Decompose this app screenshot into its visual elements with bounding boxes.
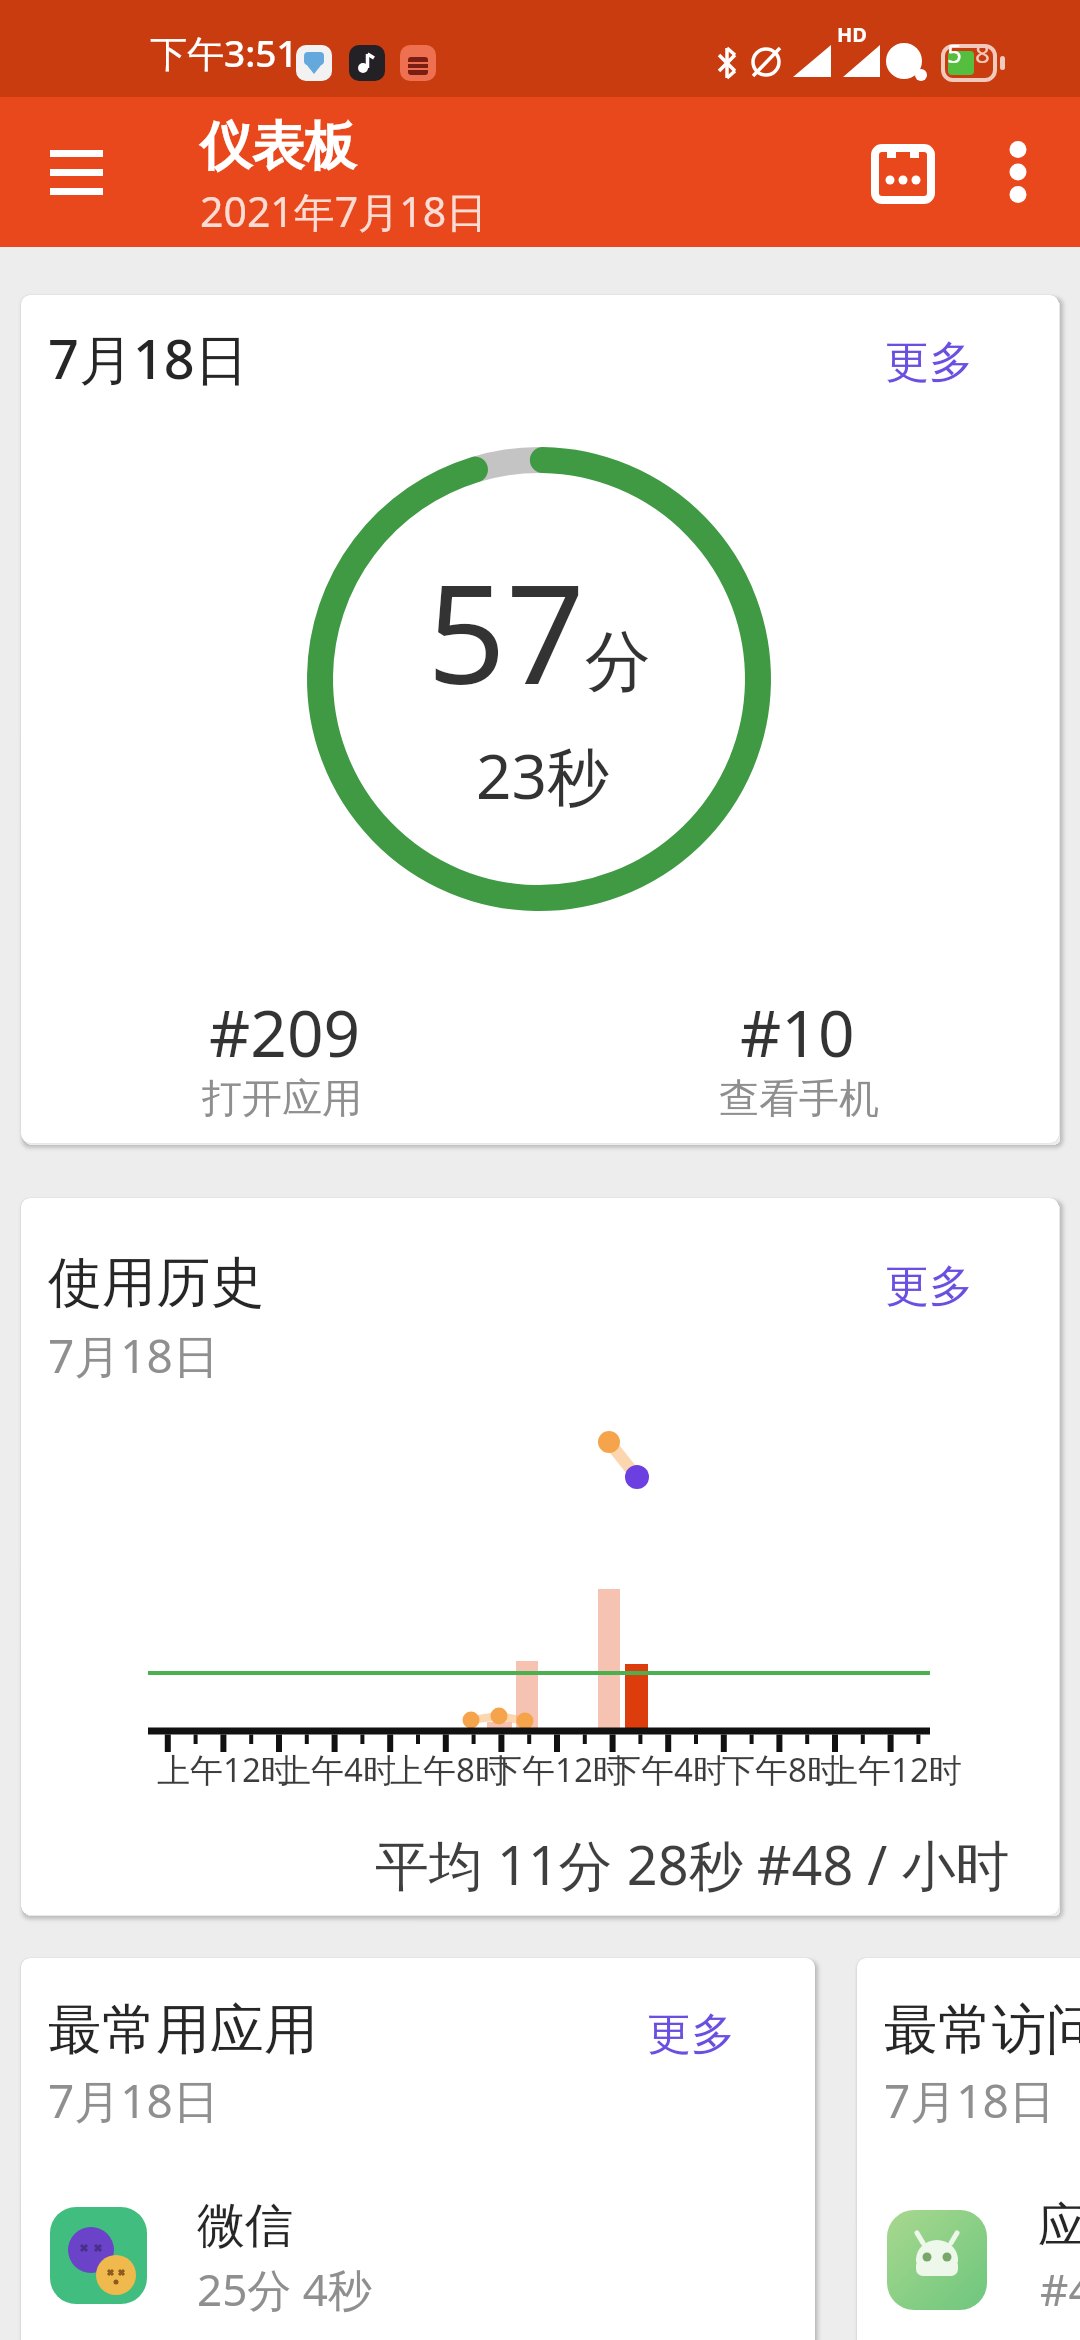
staticText: 上午12时 (825, 1747, 962, 1792)
staticText: 7月18日 (48, 2069, 219, 2132)
staticText: 上午4时 (278, 1747, 396, 1792)
staticText: 更多 (647, 2007, 735, 2062)
staticText: 更多 (885, 335, 973, 390)
staticText: 最常用应用 (48, 1996, 318, 2064)
staticText: 57分 (427, 536, 651, 716)
staticText: 7月18日 (884, 2069, 1055, 2132)
staticText: 仪表板 (200, 114, 356, 180)
staticText: 最常访问 (884, 1996, 1080, 2064)
staticText: 更多 (885, 1259, 973, 1314)
button[interactable] (28, 124, 124, 220)
staticText: 上午12时 (157, 1747, 294, 1792)
staticText: 下午8时 (722, 1747, 840, 1792)
staticText: 下午3:51 (150, 27, 298, 78)
staticText: 7月18日 (48, 1324, 219, 1387)
staticText: 8 (975, 35, 990, 70)
staticText: 下午4时 (608, 1747, 726, 1792)
staticText: 上午8时 (390, 1747, 508, 1792)
staticText: #48 (1040, 2259, 1080, 2319)
button[interactable]: 更多 (813, 1226, 973, 1346)
button[interactable] (970, 124, 1066, 220)
button[interactable]: 更多 (575, 1974, 735, 2094)
staticText: 2021年7月18日 (200, 183, 488, 239)
staticText: 5 (947, 35, 962, 70)
staticText: 下午12时 (489, 1747, 626, 1792)
button[interactable]: 更多 (813, 302, 973, 422)
staticText: 平均 11分 28秒 #48 / 小时 (375, 1827, 1010, 1901)
staticText: #209 (209, 989, 361, 1076)
button[interactable] (50, 2199, 790, 2319)
staticText: 微信 (197, 2196, 293, 2256)
button[interactable] (887, 2199, 1080, 2319)
staticText: 7月18日 (48, 321, 249, 395)
button[interactable] (855, 124, 951, 220)
staticText: 应用使用情况 (1038, 2196, 1080, 2256)
staticText: 使用历史 (48, 1249, 264, 1317)
staticText: HD (837, 21, 867, 48)
staticText: 打开应用 (202, 1073, 362, 1123)
staticText: 23秒 (476, 733, 609, 818)
staticText: 查看手机 (719, 1073, 879, 1123)
staticText: 25分 4秒 (197, 2259, 372, 2319)
staticText: #10 (740, 989, 855, 1076)
